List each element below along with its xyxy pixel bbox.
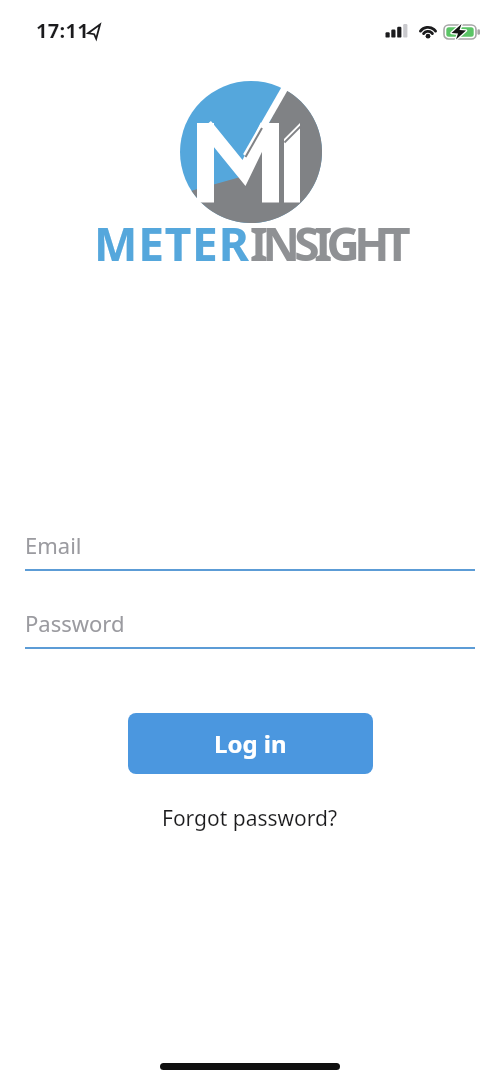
staticText: Password [25, 608, 125, 638]
staticText: Log in [214, 727, 287, 760]
button[interactable]: Email [25, 526, 475, 571]
button[interactable]: Password [25, 604, 475, 649]
staticText: 17:11 [36, 17, 89, 44]
staticText: Email [25, 530, 82, 560]
button[interactable]: Log in [128, 713, 373, 774]
staticText: INSIGHT [250, 212, 406, 275]
staticText: METER [94, 212, 250, 275]
button[interactable]: Forgot password? [162, 804, 338, 833]
